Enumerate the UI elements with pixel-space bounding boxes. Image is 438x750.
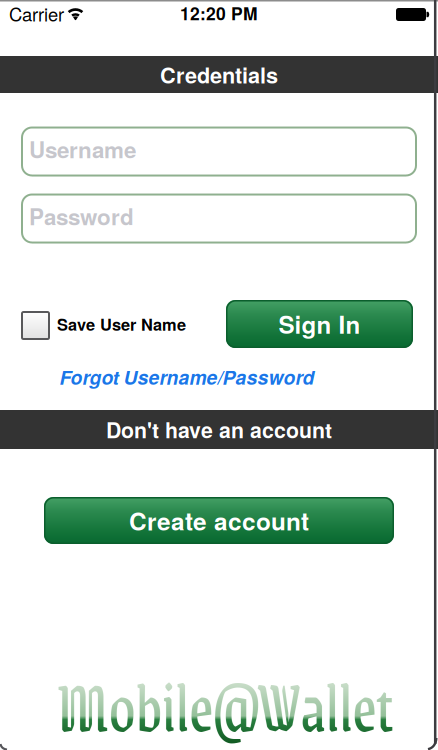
staticText: Password xyxy=(29,200,134,232)
button[interactable]: Password xyxy=(21,193,417,243)
button[interactable]: Forgot Username/Password xyxy=(59,363,314,391)
button[interactable]: Username xyxy=(21,126,417,176)
staticText: Forgot Username/Password xyxy=(59,363,314,391)
staticText: Carrier xyxy=(9,0,64,27)
staticText: Sign In xyxy=(278,307,360,341)
staticText: Credentials xyxy=(160,59,278,90)
staticText: 12:20 PM xyxy=(180,0,258,25)
staticText: Username xyxy=(29,133,136,165)
staticText: Create account xyxy=(129,503,309,538)
button[interactable]: Save User Name xyxy=(21,311,50,340)
staticText: Save User Name xyxy=(57,312,186,336)
button[interactable]: Create account xyxy=(44,497,394,544)
button[interactable]: Sign In xyxy=(226,300,413,348)
staticText: Don't have an account xyxy=(106,414,332,445)
